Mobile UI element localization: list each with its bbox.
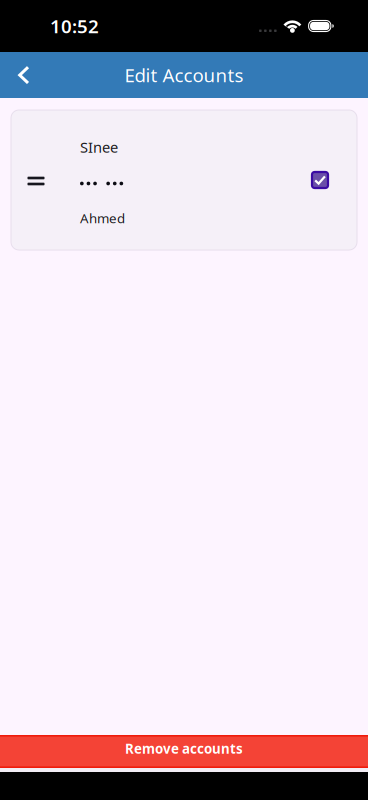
button[interactable]: Reorder account — [16, 161, 56, 201]
button[interactable]: Remove accounts — [0, 735, 368, 768]
button[interactable]: SInee — [11, 110, 357, 250]
button[interactable]: Back — [0, 52, 45, 98]
staticText: 10:52 — [50, 14, 99, 38]
staticText: Remove accounts — [125, 740, 243, 757]
button[interactable]: Account selected — [300, 160, 340, 200]
staticText: SInee — [80, 137, 118, 157]
staticText: Ahmed — [80, 209, 125, 227]
staticText: Edit Accounts — [124, 63, 243, 87]
